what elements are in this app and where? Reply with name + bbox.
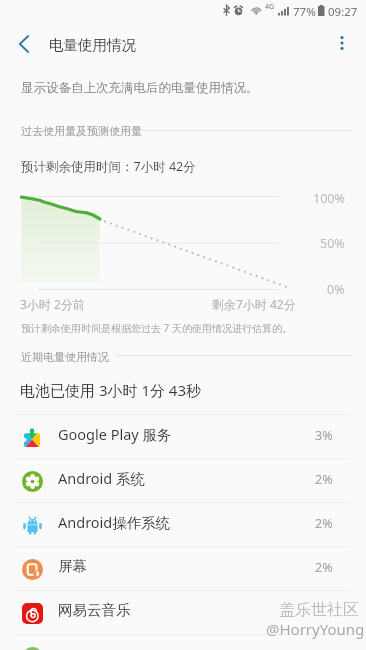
staticText: 09:27 <box>328 4 358 20</box>
staticText: 屏幕 <box>58 557 87 575</box>
staticText: 电量使用情况 <box>49 36 136 54</box>
staticText: 100% <box>313 190 345 207</box>
staticText: 2% <box>315 559 333 576</box>
button[interactable] <box>0 635 366 650</box>
staticText: 盖乐世社区 <box>279 600 359 620</box>
staticText: 近期电量使用情况 <box>21 350 109 364</box>
button[interactable]: Back <box>6 26 42 62</box>
staticText: Android 系统 <box>58 468 146 488</box>
button[interactable]: More options <box>324 25 360 61</box>
button[interactable]: 网易云音乐 <box>0 591 366 634</box>
staticText: 3% <box>315 427 333 444</box>
staticText: 3小时 2分前 <box>20 296 85 312</box>
staticText: Google Play 服务 <box>58 424 172 444</box>
staticText: 0% <box>327 281 345 298</box>
staticText: 电池已使用 3小时 1分 43秒 <box>20 380 202 400</box>
staticText: @HorryYoung <box>266 619 365 639</box>
button[interactable]: 屏幕 <box>0 547 366 590</box>
button[interactable]: Android 系统 <box>0 459 366 502</box>
staticText: 显示设备自上次充满电后的电量使用情况。 <box>21 80 259 96</box>
staticText: 预计剩余使用时间是根据您过去 7 天的使用情况进行估算的。 <box>21 321 292 335</box>
staticText: 4G <box>265 2 275 12</box>
staticText: Android操作系统 <box>58 512 171 532</box>
button[interactable]: Google Play 服务 <box>0 415 366 458</box>
staticText: 预计剩余使用时间：7小时 42分 <box>21 158 196 175</box>
staticText: 过去使用量及预测使用量 <box>21 124 142 138</box>
staticText: 77% <box>293 4 316 20</box>
staticText: 网易云音乐 <box>58 601 131 619</box>
staticText: 剩余7小时 42分 <box>212 296 296 312</box>
staticText: 2% <box>315 471 333 488</box>
staticText: 50% <box>320 235 345 252</box>
staticText: 2% <box>315 515 333 532</box>
button[interactable]: Android操作系统 <box>0 503 366 546</box>
